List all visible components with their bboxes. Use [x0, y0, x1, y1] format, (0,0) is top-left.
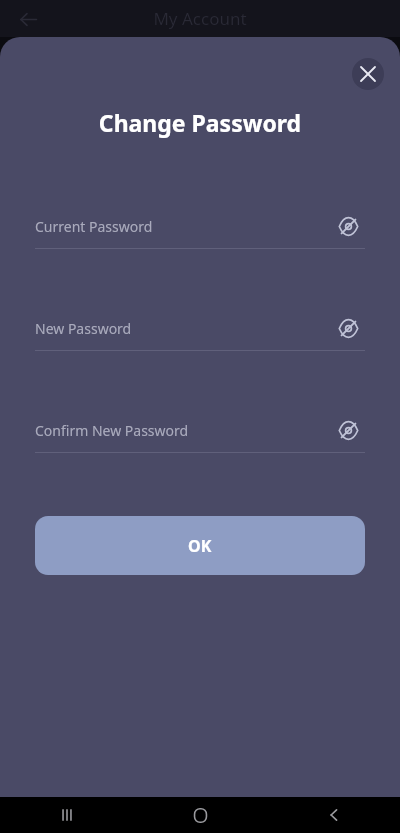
button[interactable]: Back: [267, 797, 400, 833]
staticText: Confirm New Password: [35, 421, 331, 440]
button[interactable]: Show password: [331, 413, 365, 447]
button[interactable]: Home: [134, 797, 267, 833]
staticText: My Account: [153, 7, 247, 30]
button[interactable]: Close: [352, 58, 384, 90]
staticText: OK: [188, 535, 212, 557]
button[interactable]: Recent apps: [0, 797, 134, 833]
button[interactable]: Show password: [331, 311, 365, 345]
staticText: New Password: [35, 319, 331, 338]
button[interactable]: Back: [12, 3, 44, 35]
button[interactable]: Show password: [331, 209, 365, 243]
staticText: Change Password: [0, 107, 400, 138]
button[interactable]: OK: [35, 516, 365, 575]
staticText: Current Password: [35, 217, 331, 236]
